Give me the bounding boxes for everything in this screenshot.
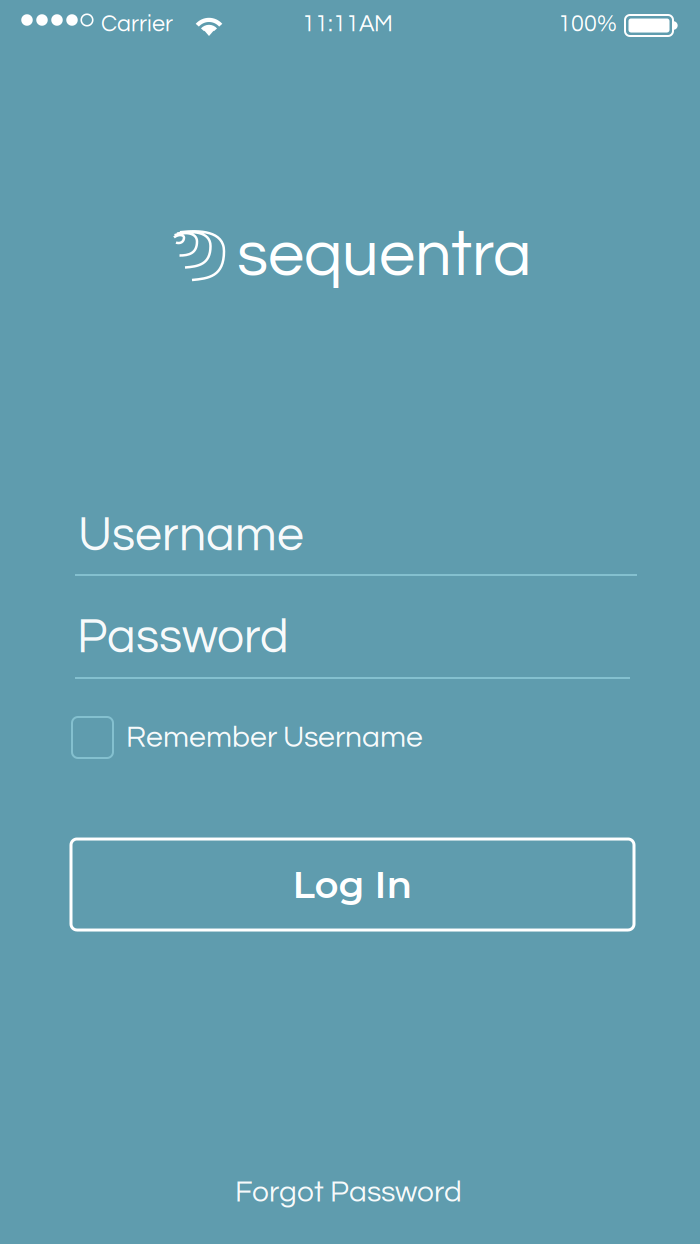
staticText: Username	[78, 511, 304, 560]
button[interactable]: Remember Username	[72, 717, 423, 758]
staticText: sequentra	[237, 222, 531, 289]
staticText: 100%	[558, 12, 617, 36]
button[interactable]: Log In	[71, 839, 634, 930]
staticText: Log In	[292, 862, 412, 907]
staticText: 11:11AM	[302, 12, 393, 36]
staticText: Remember Username	[126, 722, 423, 753]
staticText: Password	[77, 613, 289, 662]
staticText: Forgot Password	[235, 1177, 462, 1208]
staticText: Carrier	[101, 12, 173, 36]
button[interactable]: Forgot Password	[235, 1177, 462, 1208]
